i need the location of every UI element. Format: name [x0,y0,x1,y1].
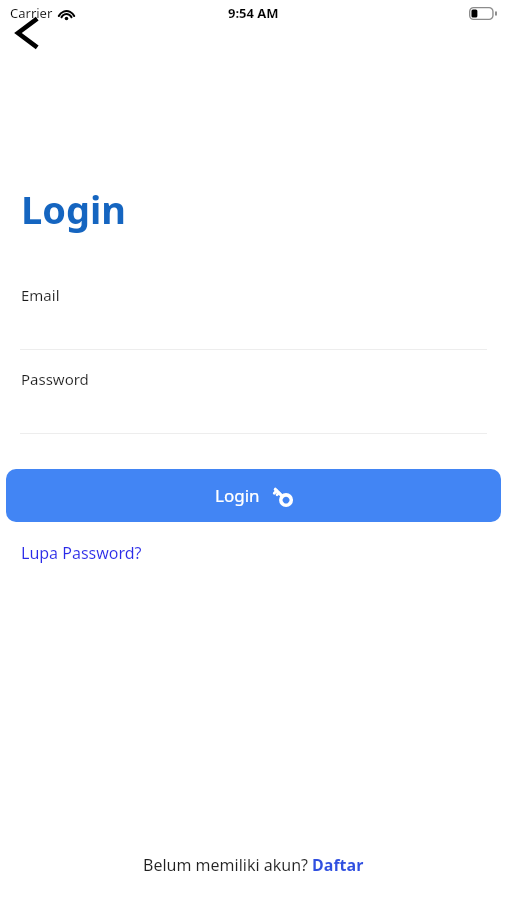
staticText: 9:54 AM [228,4,279,22]
button[interactable]: Lupa Password? [21,542,142,564]
staticText: Carrier [10,4,53,22]
button[interactable]: Back [6,13,46,53]
staticText: Password [21,369,89,389]
staticText: Lupa Password? [21,542,142,564]
button[interactable]: Login [6,469,501,522]
staticText: Login [215,484,260,507]
button[interactable]: Belum memiliki akun? Daftar [143,854,364,876]
staticText: Login [21,183,127,235]
staticText: Belum memiliki akun? Daftar [143,854,364,876]
staticText: Email [21,285,60,305]
